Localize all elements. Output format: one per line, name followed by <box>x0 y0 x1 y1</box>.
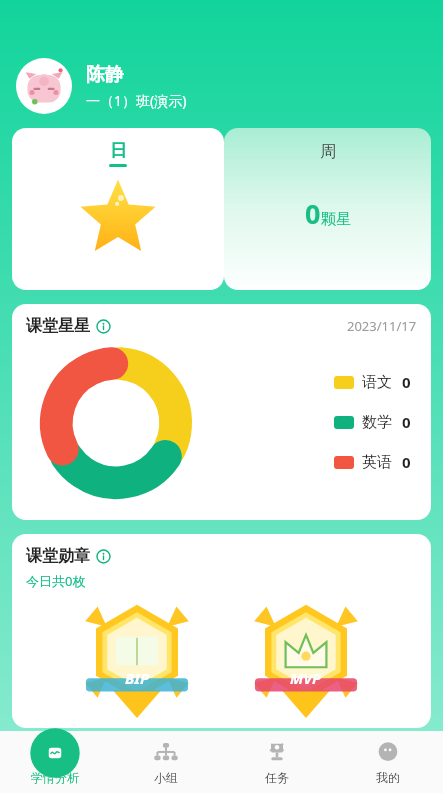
staticText: MVP <box>290 668 322 688</box>
staticText: 0 <box>402 412 411 432</box>
staticText: 0 <box>402 452 411 472</box>
button[interactable]: 周 <box>224 128 431 290</box>
staticText: 周 <box>320 142 336 162</box>
staticText: 语文 <box>362 373 392 392</box>
button[interactable]: 说明 <box>96 549 111 564</box>
staticText: 颗星 <box>321 210 351 229</box>
button[interactable]: 任务 <box>221 731 332 793</box>
staticText: 学情分析 <box>31 770 79 785</box>
staticText: 小组 <box>154 770 178 785</box>
staticText: 今日共0枚 <box>26 572 86 590</box>
staticText: 陈静 <box>86 63 124 87</box>
staticText: 0 <box>305 195 321 232</box>
staticText: 课堂勋章 <box>26 546 90 566</box>
staticText: 我的 <box>376 770 400 785</box>
button[interactable]: 说明 <box>96 319 111 334</box>
button[interactable]: MVP <box>248 600 364 716</box>
button[interactable]: 日 <box>12 128 224 290</box>
button[interactable]: 陈静 <box>16 58 443 114</box>
staticText: 0 <box>402 372 411 392</box>
staticText: 任务 <box>265 770 289 785</box>
staticText: BIP <box>125 668 150 688</box>
staticText: 日 <box>110 140 127 161</box>
button[interactable]: 我的 <box>332 731 443 793</box>
button[interactable]: 小组 <box>110 731 221 793</box>
staticText: 2023/11/17 <box>347 317 417 335</box>
staticText: 课堂星星 <box>26 316 90 336</box>
staticText: 数学 <box>362 413 392 432</box>
button[interactable]: BIP <box>79 600 195 716</box>
staticText: 一（1）班(演示) <box>86 91 187 110</box>
button[interactable]: 学情分析 <box>0 731 110 793</box>
staticText: 英语 <box>362 453 392 472</box>
